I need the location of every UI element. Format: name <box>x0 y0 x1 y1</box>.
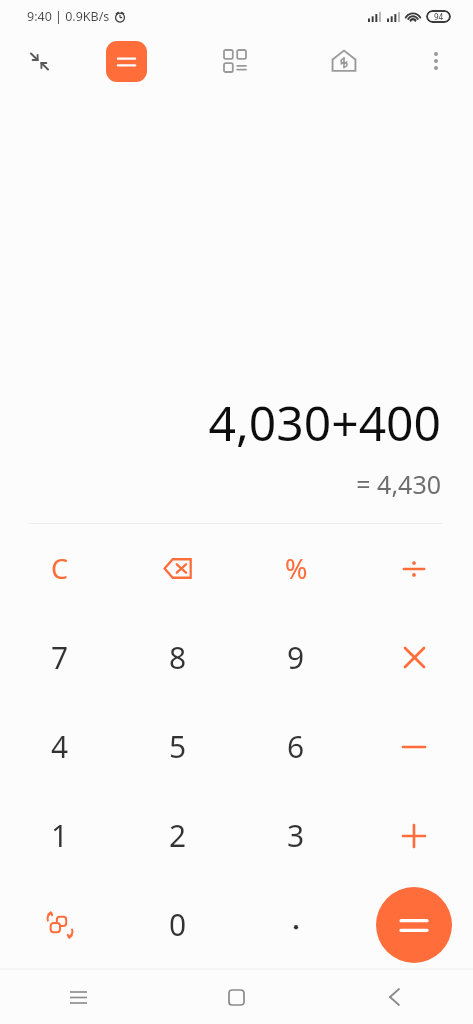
button[interactable]: 3 <box>237 791 355 880</box>
button[interactable]: 7 <box>0 613 119 702</box>
button[interactable]: C <box>0 524 119 613</box>
staticText: 2 <box>169 815 187 856</box>
button[interactable]: 0 <box>119 880 237 969</box>
button[interactable]: Loan calculator <box>322 39 366 83</box>
button[interactable]: Backspace <box>119 524 237 613</box>
staticText: 5 <box>169 726 187 767</box>
button[interactable]: More options <box>417 42 455 80</box>
button[interactable]: % <box>237 524 355 613</box>
staticText: 1 <box>51 815 69 856</box>
button[interactable]: Subtract <box>355 702 473 791</box>
button[interactable]: Add <box>355 791 473 880</box>
button[interactable] <box>237 880 355 969</box>
button[interactable]: Conversions <box>214 40 256 82</box>
staticText: = 4,430 <box>356 467 441 501</box>
button[interactable]: 5 <box>119 702 237 791</box>
staticText: 8 <box>169 637 187 678</box>
staticText: 9:40 | 0.9KB/s <box>27 8 110 25</box>
button[interactable]: Unit converter <box>0 880 119 969</box>
staticText: % <box>285 550 308 587</box>
button[interactable]: Calculator <box>106 41 147 82</box>
staticText: C <box>51 550 69 587</box>
staticText: 9 <box>287 637 305 678</box>
button[interactable]: Divide <box>355 524 473 613</box>
button[interactable]: Multiply <box>355 613 473 702</box>
staticText: 7 <box>51 637 69 678</box>
button[interactable]: 8 <box>119 613 237 702</box>
staticText: 4,030+400 <box>208 390 441 455</box>
button[interactable]: 1 <box>0 791 119 880</box>
button[interactable]: 9 <box>237 613 355 702</box>
button[interactable]: 6 <box>237 702 355 791</box>
button[interactable]: Equals <box>376 887 452 963</box>
button[interactable]: Recents <box>0 970 157 1024</box>
button[interactable]: Home <box>157 970 315 1024</box>
staticText: 4 <box>51 726 69 767</box>
button[interactable]: Back <box>315 970 473 1024</box>
button[interactable]: Collapse <box>18 40 60 82</box>
staticText: 3 <box>287 815 305 856</box>
staticText: 94 <box>434 11 444 22</box>
staticText: 6 <box>287 726 305 767</box>
staticText: 0 <box>169 904 187 945</box>
button[interactable]: 4 <box>0 702 119 791</box>
button[interactable]: 2 <box>119 791 237 880</box>
